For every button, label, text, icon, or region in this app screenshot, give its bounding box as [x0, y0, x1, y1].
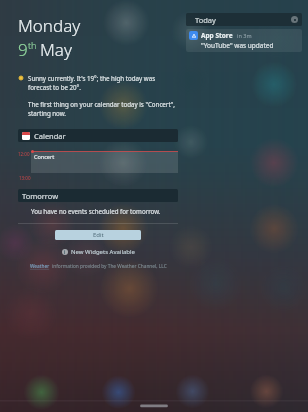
staticText: Today — [195, 15, 216, 25]
button[interactable]: i — [62, 248, 135, 256]
staticText: "YouTube" was updated — [201, 41, 274, 50]
button[interactable]: Tomorrow — [18, 189, 178, 202]
staticText: i — [64, 249, 66, 255]
staticText: 12:00 — [18, 151, 31, 157]
button[interactable]: Today — [186, 13, 302, 26]
staticText: Monday — [18, 14, 81, 37]
button[interactable]: Clear all notifications — [291, 16, 298, 23]
staticText: th — [28, 39, 37, 51]
staticText: 13:00 — [19, 175, 31, 181]
staticText: Edit — [93, 231, 104, 239]
button[interactable]: Calendar — [18, 129, 178, 142]
button[interactable]: App Store — [186, 29, 302, 52]
button[interactable]: Edit — [55, 230, 141, 240]
staticText: You have no events scheduled for tomorro… — [31, 207, 161, 215]
staticText: Tomorrow — [22, 191, 59, 201]
staticText: Concert — [34, 153, 55, 160]
staticText: New Widgets Available — [71, 248, 135, 256]
staticText: The first thing on your calendar today i… — [28, 100, 178, 118]
staticText: Weather — [30, 263, 50, 270]
staticText: information provided by The Weather Chan… — [52, 263, 167, 270]
staticText: 9 — [18, 38, 28, 61]
button[interactable]: Concert — [31, 151, 178, 173]
staticText: in 3m — [237, 32, 252, 39]
staticText: Calendar — [34, 131, 66, 141]
staticText: Sunny currently. It's 19°; the high toda… — [28, 74, 178, 92]
staticText: May — [40, 38, 72, 61]
staticText: App Store — [201, 31, 233, 40]
